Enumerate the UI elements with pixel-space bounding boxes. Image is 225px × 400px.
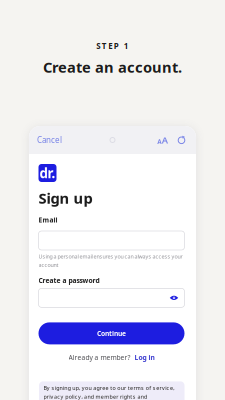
staticText: Using a personal email ensures you can a… bbox=[38, 253, 182, 268]
staticText: Email bbox=[38, 216, 57, 224]
button[interactable]: Cancel bbox=[37, 135, 62, 145]
button[interactable]: Reload page bbox=[177, 135, 186, 144]
staticText: Already a member? bbox=[68, 353, 134, 362]
staticText: dr. bbox=[39, 164, 55, 182]
staticText: By signing up, you agree to our terms of… bbox=[43, 384, 174, 400]
button[interactable]: Show password bbox=[169, 295, 178, 301]
button[interactable]: Log in bbox=[134, 353, 154, 362]
staticText: Cancel bbox=[37, 135, 62, 145]
staticText: A bbox=[162, 134, 168, 146]
button[interactable]: Continue bbox=[38, 322, 184, 344]
staticText: Continue bbox=[97, 329, 126, 338]
staticText: Create a password bbox=[38, 276, 99, 285]
staticText: STEP 1 bbox=[96, 41, 129, 51]
staticText: Create an account. bbox=[43, 57, 182, 77]
staticText: Log in bbox=[134, 353, 154, 362]
staticText: Sign up bbox=[38, 188, 92, 208]
staticText: A bbox=[157, 137, 161, 146]
button[interactable]: Page settings bbox=[158, 135, 167, 144]
